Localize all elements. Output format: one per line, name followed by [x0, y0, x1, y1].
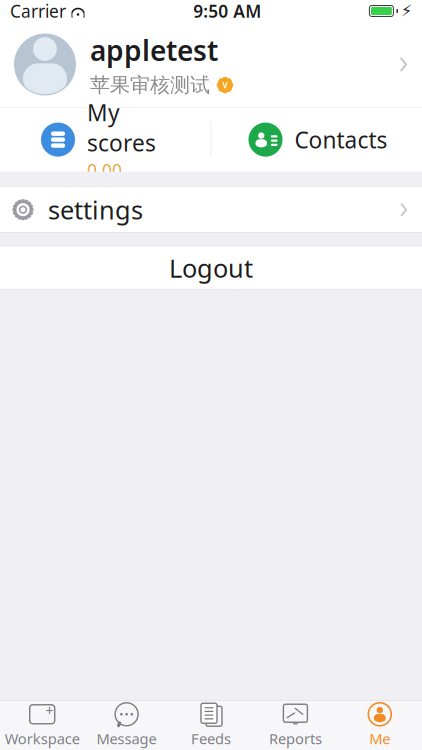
button[interactable]: Me	[338, 701, 422, 750]
staticText: My scores	[87, 97, 156, 158]
staticText: Message	[97, 729, 157, 748]
staticText: settings	[48, 193, 143, 226]
staticText: Reports	[269, 729, 322, 748]
button[interactable]: Logout	[0, 246, 422, 289]
staticText: +	[45, 700, 53, 720]
staticText: Feeds	[191, 729, 231, 748]
staticText: appletest	[90, 32, 218, 69]
staticText: 苹果审核测试	[90, 73, 210, 97]
button[interactable]: settings	[0, 187, 422, 232]
staticText: 9:50 AM	[193, 0, 261, 22]
staticText: 0.00	[87, 159, 122, 182]
staticText: Workspace	[5, 729, 80, 748]
staticText: Me	[369, 729, 390, 748]
staticText: Contacts	[294, 124, 387, 155]
staticText: Logout	[169, 251, 253, 285]
button[interactable]: +	[0, 701, 84, 750]
staticText: Carrier	[10, 0, 66, 22]
staticText: V	[222, 80, 227, 90]
button[interactable]: My scores	[0, 108, 210, 172]
button[interactable]: appletest	[0, 22, 422, 107]
button[interactable]: Contacts	[211, 108, 422, 172]
button[interactable]: Feeds	[169, 701, 253, 750]
staticText: ⚡︎	[401, 2, 412, 20]
button[interactable]: Message	[84, 701, 169, 750]
button[interactable]: Reports	[253, 701, 338, 750]
